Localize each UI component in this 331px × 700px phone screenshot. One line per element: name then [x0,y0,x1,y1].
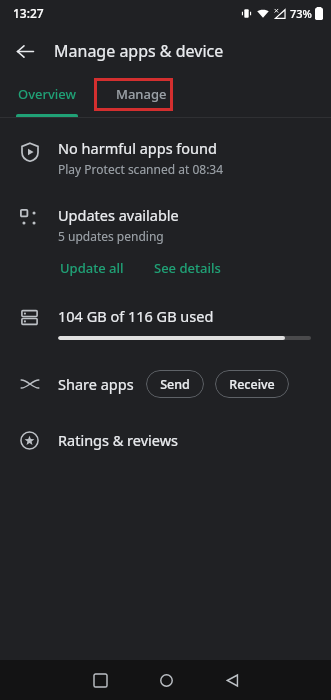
staticText: Overview [18,85,77,103]
button[interactable]: No harmful apps found [0,132,331,183]
staticText: Send [160,376,190,393]
button[interactable]: Overview [0,76,94,117]
staticText: Update all [60,259,124,277]
button[interactable]: 104 GB of 116 GB used [0,306,331,340]
staticText: Manage [116,85,167,103]
staticText: 5 updates pending [58,228,164,244]
staticText: 73% [290,6,312,21]
staticText: Updates available [58,205,179,225]
button[interactable]: See details [152,256,223,280]
staticText: Ratings & reviews [58,430,179,450]
staticText: Manage apps & device [54,40,224,62]
staticText: 13:27 [13,5,44,21]
button[interactable]: Back [209,660,255,700]
button[interactable]: Update all [58,256,126,280]
staticText: No harmful apps found [58,138,217,158]
staticText: Play Protect scanned at 08:34 [58,161,224,177]
staticText: See details [154,259,221,277]
button[interactable]: Manage [94,76,188,117]
button[interactable]: Home [143,660,189,700]
staticText: 104 GB of 116 GB used [58,306,214,326]
button[interactable]: Send [146,370,204,398]
staticText: Share apps [58,374,134,394]
button[interactable]: Receive [215,370,289,398]
button[interactable]: Recent apps [77,660,123,700]
staticText: Receive [229,376,275,393]
button[interactable]: Updates available [58,205,179,244]
button[interactable]: Back [8,34,42,68]
button[interactable]: Ratings & reviews [0,424,331,456]
